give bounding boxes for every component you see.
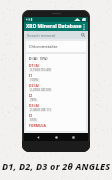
staticText: 100% (30, 78, 39, 82)
staticText: D (A) I(%) (29, 56, 48, 61)
staticText: D1 (A) (29, 63, 39, 68)
button[interactable]: Recent apps (70, 134, 77, 141)
button[interactable]: XRD Mineral Database (24, 22, 88, 31)
staticText: XRD Mineral Database (26, 23, 82, 30)
staticText: Search mineral (27, 33, 56, 38)
staticText: I3 (29, 113, 33, 118)
staticText: 78% (30, 98, 37, 102)
staticText: 55% (30, 118, 37, 122)
button[interactable]: Home (53, 134, 60, 141)
staticText: I1 (29, 73, 33, 78)
staticText: 2.0450 (38.11) (30, 108, 51, 112)
staticText: 2.2900 (20.50) (30, 88, 51, 92)
button[interactable]: Back (35, 134, 42, 141)
button[interactable]: Search mineral (24, 31, 88, 39)
staticText: Chlorometalite (29, 44, 58, 49)
staticText: FORMULA (29, 123, 46, 128)
button[interactable]: Chlorometalite (26, 41, 86, 52)
button[interactable]: More options (82, 23, 86, 31)
other: Search (81, 33, 85, 37)
staticText: D2 (A) (29, 83, 39, 88)
staticText: 3.1500 (10.40) (30, 68, 51, 72)
button[interactable]: D (A) I(%) (26, 54, 86, 131)
staticText: D1, D2, D3 or 2θ ANGLES (2, 160, 111, 172)
staticText: D3 (A) (29, 103, 39, 108)
staticText: I2 (29, 93, 33, 98)
